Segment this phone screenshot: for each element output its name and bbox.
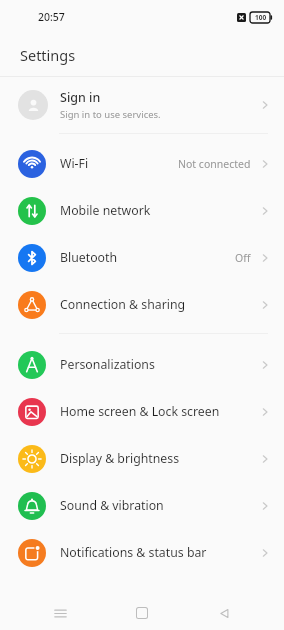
other: Notifications and status bar: [18, 539, 46, 567]
staticText: Not connected: [178, 157, 251, 171]
staticText: Connection & sharing: [60, 296, 186, 313]
other: Mobile network: [18, 197, 46, 225]
button[interactable]: Display and brightness: [0, 435, 284, 482]
other: Home screen and Lock screen: [18, 398, 46, 426]
button[interactable]: Recents: [38, 596, 82, 630]
staticText: Sound & vibration: [60, 497, 164, 514]
button[interactable]: Bluetooth: [0, 234, 284, 281]
button[interactable]: Mobile network: [0, 187, 284, 234]
staticText: Settings: [20, 45, 76, 65]
button[interactable]: Personalizations: [0, 341, 284, 388]
staticText: Sign in: [60, 89, 101, 106]
staticText: Bluetooth: [60, 249, 118, 266]
staticText: Display & brightness: [60, 450, 180, 467]
staticText: Personalizations: [60, 356, 155, 373]
button[interactable]: Home screen and Lock screen: [0, 388, 284, 435]
staticText: Home screen & Lock screen: [60, 403, 220, 420]
button[interactable]: Notifications and status bar: [0, 529, 284, 576]
button[interactable]: Back: [202, 596, 246, 630]
staticText: Wi-Fi: [60, 155, 89, 172]
button[interactable]: Sign in: [0, 77, 284, 133]
button[interactable]: Sound and vibration: [0, 482, 284, 529]
button[interactable]: Home: [120, 596, 164, 630]
other: Connection and sharing: [18, 291, 46, 319]
staticText: 100: [255, 13, 267, 22]
button[interactable]: Wi-Fi: [0, 140, 284, 187]
staticText: Sign in to use services.: [60, 108, 161, 121]
other: Sound and vibration: [18, 492, 46, 520]
other: Bluetooth: [18, 244, 46, 272]
staticText: Notifications & status bar: [60, 544, 207, 561]
staticText: Mobile network: [60, 202, 151, 219]
staticText: Off: [235, 251, 251, 265]
other: Display and brightness: [18, 445, 46, 473]
other: Personalizations: [18, 351, 46, 379]
staticText: 20:57: [38, 10, 65, 24]
other: Wi-Fi: [18, 150, 46, 178]
button[interactable]: Connection and sharing: [0, 281, 284, 328]
